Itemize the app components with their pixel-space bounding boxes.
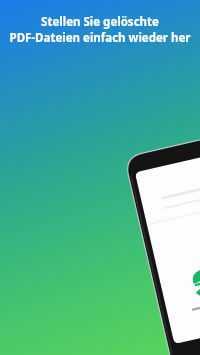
button[interactable]: Scan PDF app preview on phone bbox=[0, 0, 200, 355]
staticText: PDF-Dateien einfach wieder her bbox=[6, 30, 194, 46]
staticText: Stellen Sie gelöschte bbox=[6, 14, 194, 30]
